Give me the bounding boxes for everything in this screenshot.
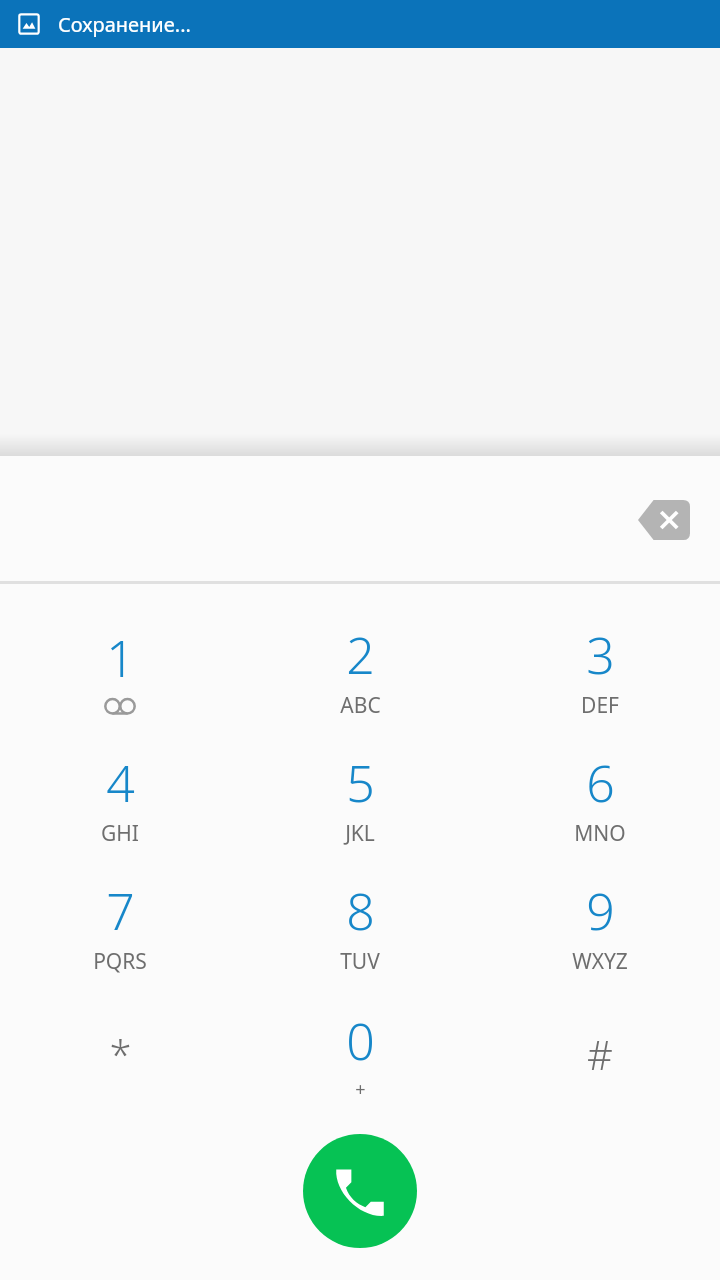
button[interactable]: 7 [0,862,240,990]
button[interactable]: * [0,990,240,1118]
button[interactable]: 8 [240,862,480,990]
staticText: + [355,1077,366,1102]
staticText: 9 [586,877,615,945]
staticText: 5 [346,749,375,817]
staticText: 8 [346,877,375,945]
button[interactable]: 5 [240,734,480,862]
button[interactable]: 3 [480,606,720,734]
staticText: 2 [346,621,375,689]
staticText: DEF [581,691,619,720]
staticText: 7 [106,877,135,945]
staticText: WXYZ [572,947,628,976]
button[interactable]: 9 [480,862,720,990]
staticText: MNO [574,819,626,848]
staticText: # [587,1027,613,1081]
staticText: 3 [586,621,615,689]
staticText: 6 [586,749,615,817]
button[interactable]: 2 [240,606,480,734]
button[interactable]: # [480,990,720,1118]
staticText: ABC [340,691,381,720]
button[interactable]: 6 [480,734,720,862]
staticText: JKL [345,819,375,848]
button[interactable]: Backspace [632,492,696,548]
staticText: Сохранение... [58,11,191,38]
staticText: GHI [101,819,139,848]
button[interactable]: 1 [0,606,240,734]
staticText: * [109,1027,132,1081]
button[interactable]: 4 [0,734,240,862]
staticText: 0 [346,1007,375,1075]
staticText: 1 [106,624,135,692]
staticText: TUV [340,947,380,976]
staticText: 4 [106,749,135,817]
staticText: PQRS [93,947,147,976]
button[interactable]: 0 [240,990,480,1118]
button[interactable]: Call [303,1134,417,1248]
